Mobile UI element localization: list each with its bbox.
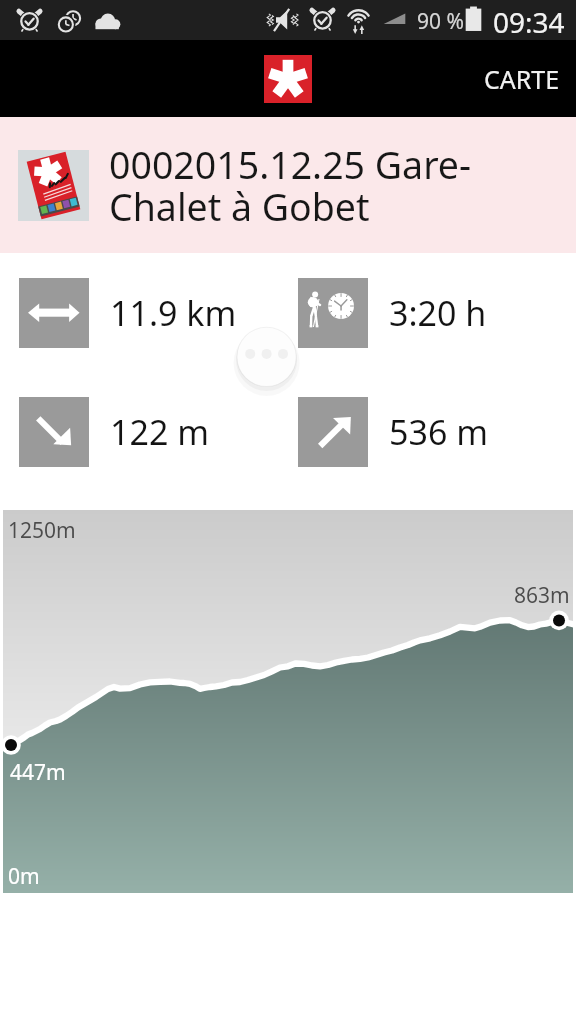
staticText: 1250m	[8, 516, 76, 545]
staticText: 122 m	[110, 409, 209, 455]
button[interactable]: More options	[233, 324, 301, 396]
staticText: 447m	[10, 758, 66, 787]
button[interactable]: 11.9 km	[19, 278, 259, 348]
staticText: 863m	[514, 581, 570, 610]
staticText: 09:34	[493, 3, 565, 41]
button[interactable]: 536 m	[298, 397, 538, 467]
button[interactable]: App logo	[264, 55, 312, 103]
staticText: 90 %	[417, 7, 464, 36]
button[interactable]: 1250m	[3, 510, 573, 893]
button[interactable]: 122 m	[19, 397, 259, 467]
staticText: 11.9 km	[110, 290, 237, 336]
staticText: 536 m	[389, 409, 488, 455]
button[interactable]: 0002015.12.25 Gare- Chalet à Gobet	[0, 117, 576, 253]
staticText: 0m	[8, 862, 40, 891]
staticText: 3:20 h	[389, 290, 487, 336]
staticText: 0002015.12.25 Gare- Chalet à Gobet	[109, 139, 472, 232]
button[interactable]: CARTE	[460, 40, 576, 117]
staticText: CARTE	[484, 62, 560, 96]
button[interactable]: 3:20 h	[298, 278, 538, 348]
